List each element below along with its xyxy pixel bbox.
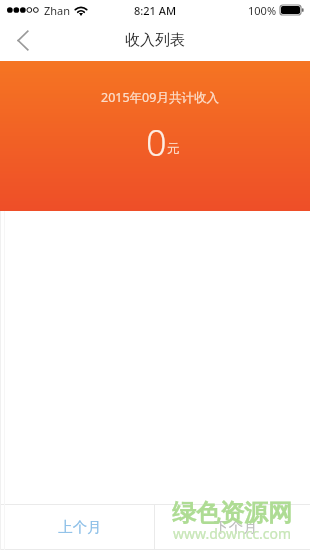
staticText: 下个月 <box>214 518 258 536</box>
staticText: 8:21 AM <box>134 3 177 18</box>
staticText: Zhan <box>44 3 71 18</box>
staticText: 100% <box>248 3 277 18</box>
staticText: 收入列表 <box>125 31 185 50</box>
button[interactable]: Back <box>1 20 45 61</box>
staticText: 绿色资源网 <box>172 498 292 528</box>
staticText: www.downcc.com <box>173 524 292 543</box>
button[interactable]: 上个月 <box>0 505 154 549</box>
staticText: 2015年09月共计收入 <box>101 89 219 106</box>
button[interactable]: 下个月 <box>155 505 310 549</box>
staticText: 上个月 <box>58 518 102 536</box>
staticText: 元 <box>167 141 180 157</box>
staticText: 0 <box>146 118 167 167</box>
